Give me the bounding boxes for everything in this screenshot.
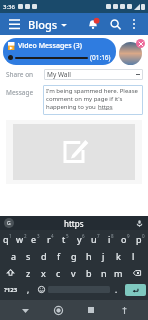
button[interactable]: Blogs bbox=[28, 17, 67, 32]
button[interactable]: m bbox=[111, 264, 126, 281]
staticText: 0 bbox=[142, 233, 145, 239]
staticText: y bbox=[77, 233, 82, 245]
button[interactable]: Notifications bbox=[84, 15, 102, 33]
button[interactable]: h bbox=[81, 247, 96, 264]
staticText: l bbox=[132, 250, 135, 262]
staticText: s bbox=[26, 250, 31, 262]
staticText: c bbox=[56, 267, 61, 279]
staticText: w bbox=[16, 233, 24, 245]
staticText: f bbox=[57, 250, 61, 262]
staticText: 3:36 bbox=[3, 3, 15, 11]
staticText: x bbox=[41, 267, 46, 279]
staticText: h bbox=[86, 250, 92, 262]
button[interactable]: Backspace bbox=[126, 264, 148, 281]
staticText: 9 bbox=[127, 233, 130, 239]
staticText: 3 bbox=[37, 233, 40, 239]
button[interactable]: t bbox=[58, 230, 73, 247]
button[interactable]: I'm being spammed here. Please bbox=[43, 85, 143, 115]
button[interactable]: Home bbox=[49, 301, 67, 319]
button[interactable]: ?123 bbox=[0, 281, 22, 298]
button[interactable]: Emoji bbox=[35, 281, 48, 298]
staticText: 5 bbox=[66, 233, 69, 239]
staticText: g bbox=[71, 250, 77, 262]
button[interactable]: Video Messages (3) bbox=[3, 38, 116, 65]
button[interactable]: . bbox=[110, 281, 123, 298]
button[interactable]: n bbox=[96, 264, 111, 281]
staticText: 1 bbox=[9, 233, 12, 239]
button[interactable]: Add photo bbox=[6, 120, 142, 184]
button[interactable]: w bbox=[14, 230, 28, 247]
staticText: q bbox=[3, 233, 9, 245]
button[interactable]: Voice settings bbox=[4, 218, 14, 228]
button[interactable]: More options bbox=[126, 16, 142, 32]
staticText: b bbox=[86, 267, 92, 279]
button[interactable]: Search bbox=[106, 15, 124, 33]
staticText: comment on my page if it's bbox=[46, 95, 123, 103]
button[interactable]: e bbox=[28, 230, 43, 247]
staticText: r bbox=[47, 233, 51, 245]
staticText: 4 bbox=[51, 233, 54, 239]
button[interactable]: g bbox=[66, 247, 81, 264]
staticText: d bbox=[41, 250, 47, 262]
staticText: e bbox=[31, 233, 37, 245]
button[interactable]: r bbox=[43, 230, 58, 247]
staticText: a bbox=[11, 250, 17, 262]
staticText: G bbox=[7, 220, 11, 227]
button[interactable]: Shift bbox=[0, 264, 21, 281]
button[interactable]: Open navigation menu bbox=[6, 16, 22, 32]
button[interactable]: z bbox=[21, 264, 36, 281]
button[interactable]: d bbox=[36, 247, 51, 264]
staticText: v bbox=[71, 267, 76, 279]
staticText: Message bbox=[6, 88, 34, 97]
button[interactable]: Back bbox=[16, 301, 34, 319]
staticText: , bbox=[27, 284, 30, 295]
button[interactable]: y bbox=[73, 230, 88, 247]
staticText: My Wall bbox=[47, 70, 71, 79]
staticText: 7 bbox=[97, 233, 100, 239]
staticText: 6 bbox=[82, 233, 85, 239]
button[interactable]: Recent apps bbox=[82, 301, 100, 319]
button[interactable]: p bbox=[133, 230, 148, 247]
button[interactable]: u bbox=[88, 230, 103, 247]
button[interactable]: s bbox=[21, 247, 36, 264]
button[interactable]: q bbox=[0, 230, 14, 247]
button[interactable]: Voice input bbox=[134, 218, 144, 228]
staticText: ?123 bbox=[4, 286, 18, 294]
button[interactable]: , bbox=[22, 281, 35, 298]
button[interactable]: My Wall bbox=[44, 69, 143, 80]
button[interactable]: Remove bbox=[136, 39, 145, 48]
staticText: i bbox=[108, 233, 111, 245]
button[interactable]: a bbox=[6, 247, 21, 264]
staticText: o bbox=[121, 233, 127, 245]
button[interactable]: k bbox=[111, 247, 126, 264]
staticText: I'm being spammed here. Please bbox=[46, 87, 138, 95]
button[interactable]: o bbox=[118, 230, 133, 247]
staticText: Blogs bbox=[28, 17, 58, 32]
button[interactable]: v bbox=[66, 264, 81, 281]
staticText: 8 bbox=[111, 233, 114, 239]
button[interactable]: Profile photo bbox=[119, 42, 142, 65]
staticText: (01:16) bbox=[90, 53, 111, 62]
staticText: j bbox=[102, 250, 105, 262]
staticText: p bbox=[136, 233, 142, 245]
staticText: u bbox=[91, 233, 97, 245]
staticText: https bbox=[98, 103, 113, 111]
button[interactable]: x bbox=[36, 264, 51, 281]
staticText: z bbox=[26, 267, 31, 279]
staticText: happening to you bbox=[46, 103, 98, 111]
staticText: Share on bbox=[6, 70, 34, 79]
staticText: k bbox=[116, 250, 121, 262]
button[interactable]: f bbox=[51, 247, 66, 264]
staticText: Video Messages (3) bbox=[18, 41, 82, 51]
button[interactable]: Enter bbox=[125, 284, 146, 296]
button[interactable]: https bbox=[64, 218, 84, 229]
button[interactable]: i bbox=[103, 230, 118, 247]
button[interactable]: j bbox=[96, 247, 111, 264]
button[interactable]: Switch keyboard bbox=[115, 301, 133, 319]
button[interactable]: b bbox=[81, 264, 96, 281]
staticText: . bbox=[115, 284, 118, 295]
button[interactable]: c bbox=[51, 264, 66, 281]
staticText: 2 bbox=[24, 233, 27, 239]
button[interactable]: l bbox=[126, 247, 141, 264]
